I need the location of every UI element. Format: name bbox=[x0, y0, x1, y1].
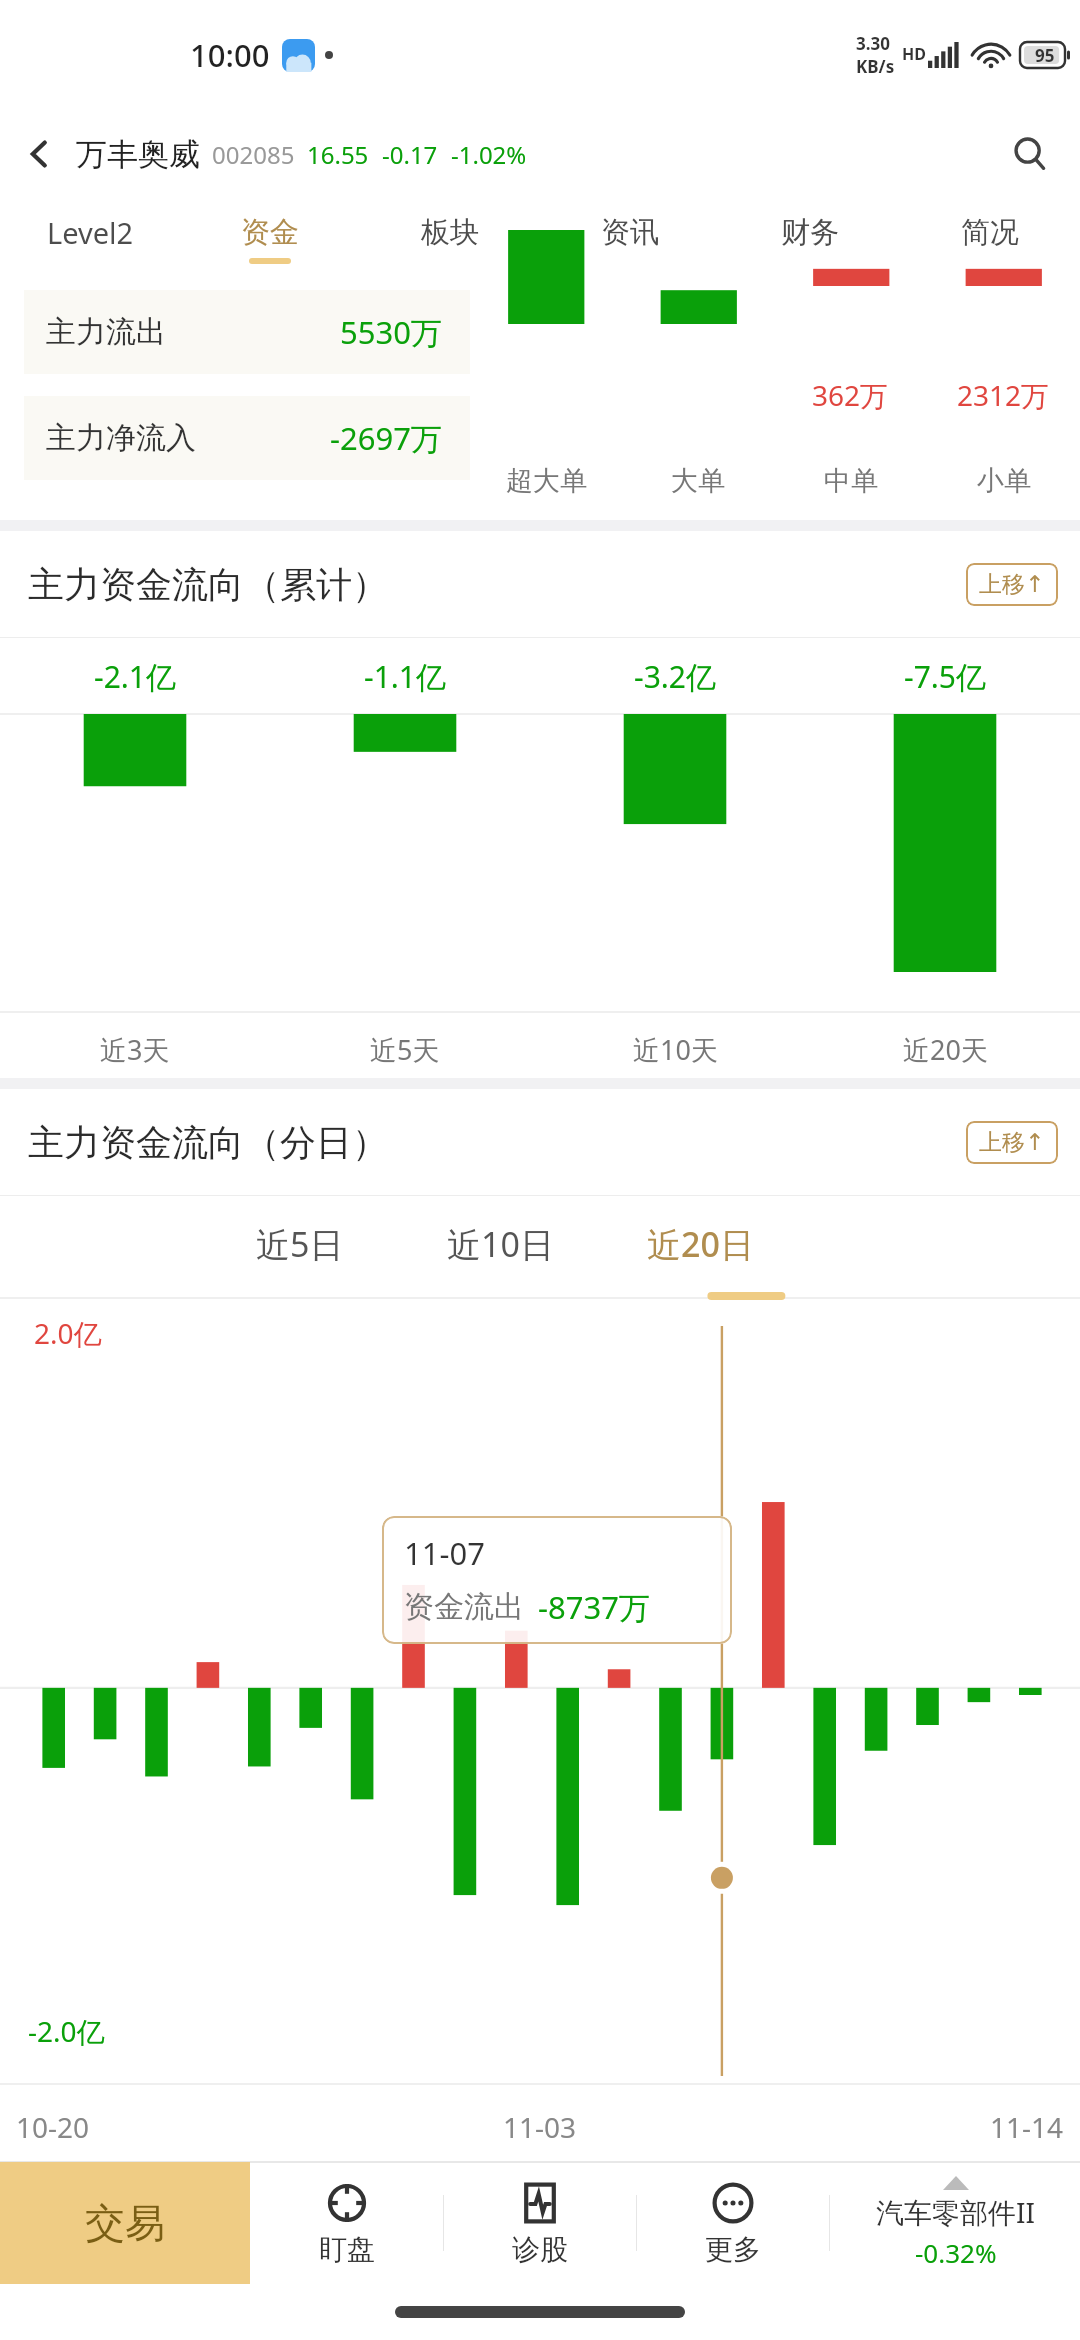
button[interactable]: Search bbox=[998, 122, 1062, 186]
staticText: 资讯 bbox=[601, 214, 659, 251]
staticText: -2.1亿 bbox=[94, 656, 177, 697]
button[interactable]: 资讯 bbox=[540, 198, 720, 280]
staticText: 汽车零部件II bbox=[876, 2193, 1035, 2231]
staticText: 资金流出 bbox=[404, 1588, 524, 1626]
staticText: -1.1亿 bbox=[364, 656, 447, 697]
button[interactable]: 主力流出 bbox=[46, 290, 448, 374]
staticText: 诊股 bbox=[512, 2232, 568, 2267]
staticText: -7.5亿 bbox=[904, 656, 987, 697]
button[interactable]: 诊股 bbox=[444, 2162, 636, 2284]
staticText: 11-07 bbox=[404, 1532, 485, 1574]
staticText: 95 bbox=[1035, 44, 1055, 67]
button[interactable]: 交易 bbox=[0, 2162, 250, 2284]
button[interactable]: Level2 bbox=[0, 198, 180, 280]
staticText: 财务 bbox=[781, 214, 839, 251]
staticText: 10-20 bbox=[16, 2108, 90, 2146]
staticText: 板块 bbox=[421, 214, 479, 251]
staticText: -8737万 bbox=[538, 1586, 650, 1628]
staticText: -3.2亿 bbox=[634, 656, 717, 697]
staticText: 主力资金流向（分日） bbox=[28, 1120, 388, 1165]
staticText: 2.0亿 bbox=[34, 1314, 102, 1352]
staticText: 11-03 bbox=[503, 2108, 577, 2146]
button[interactable]: 汽车零部件II bbox=[830, 2162, 1080, 2284]
staticText: Level2 bbox=[47, 213, 134, 252]
staticText: 近5日 bbox=[256, 1221, 344, 1267]
staticText: 上移↑ bbox=[979, 1128, 1045, 1157]
staticText: 中单 bbox=[824, 464, 878, 498]
staticText: 主力净流入 bbox=[46, 419, 196, 457]
staticText: 002085 bbox=[212, 138, 295, 171]
button[interactable]: 资金 bbox=[180, 198, 360, 280]
button[interactable]: 近10日 bbox=[400, 1196, 600, 1292]
staticText: 更多 bbox=[705, 2232, 761, 2267]
staticText: 资金 bbox=[241, 214, 299, 251]
staticText: 简况 bbox=[961, 214, 1019, 251]
staticText: -0.17 bbox=[382, 138, 438, 171]
staticText: 大单 bbox=[671, 464, 725, 498]
button[interactable]: 财务 bbox=[720, 198, 900, 280]
staticText: -0.32% bbox=[915, 2235, 997, 2270]
staticText: 362万 bbox=[812, 376, 889, 414]
staticText: 主力资金流向（累计） bbox=[28, 562, 388, 607]
button[interactable]: 上移↑ bbox=[979, 570, 1045, 599]
staticText: 近5天 bbox=[370, 1031, 440, 1068]
button[interactable]: 盯盘 bbox=[250, 2162, 443, 2284]
staticText: 3.30 bbox=[856, 32, 890, 55]
staticText: 万丰奥威 bbox=[76, 135, 200, 174]
staticText: 16.55 bbox=[307, 138, 369, 171]
staticText: -1.02% bbox=[451, 138, 527, 171]
staticText: 小单 bbox=[977, 464, 1031, 498]
staticText: -2.0亿 bbox=[28, 2012, 105, 2050]
staticText: 近10日 bbox=[447, 1221, 554, 1267]
staticText: KB/s bbox=[856, 55, 895, 78]
staticText: 5530万 bbox=[340, 311, 442, 353]
button[interactable]: 主力净流入 bbox=[46, 396, 448, 480]
staticText: 2312万 bbox=[957, 376, 1050, 414]
staticText: HD bbox=[902, 43, 926, 65]
staticText: 近20天 bbox=[903, 1031, 988, 1068]
staticText: 11-14 bbox=[990, 2108, 1064, 2146]
staticText: 近20日 bbox=[647, 1221, 754, 1267]
button[interactable]: 简况 bbox=[900, 198, 1080, 280]
staticText: 盯盘 bbox=[319, 2232, 375, 2267]
staticText: 上移↑ bbox=[979, 570, 1045, 599]
button[interactable]: 上移↑ bbox=[979, 1128, 1045, 1157]
staticText: 近10天 bbox=[633, 1031, 718, 1068]
staticText: 交易 bbox=[85, 2198, 165, 2248]
button[interactable]: 更多 bbox=[637, 2162, 829, 2284]
staticText: 近3天 bbox=[100, 1031, 170, 1068]
staticText: 主力流出 bbox=[46, 313, 166, 351]
button[interactable]: 近5日 bbox=[200, 1196, 400, 1292]
staticText: 超大单 bbox=[506, 464, 587, 498]
staticText: -2697万 bbox=[330, 417, 442, 459]
button[interactable]: 近20日 bbox=[600, 1196, 800, 1292]
button[interactable]: Back bbox=[10, 124, 70, 184]
staticText: 10:00 bbox=[190, 34, 270, 76]
button[interactable]: 板块 bbox=[360, 198, 540, 280]
